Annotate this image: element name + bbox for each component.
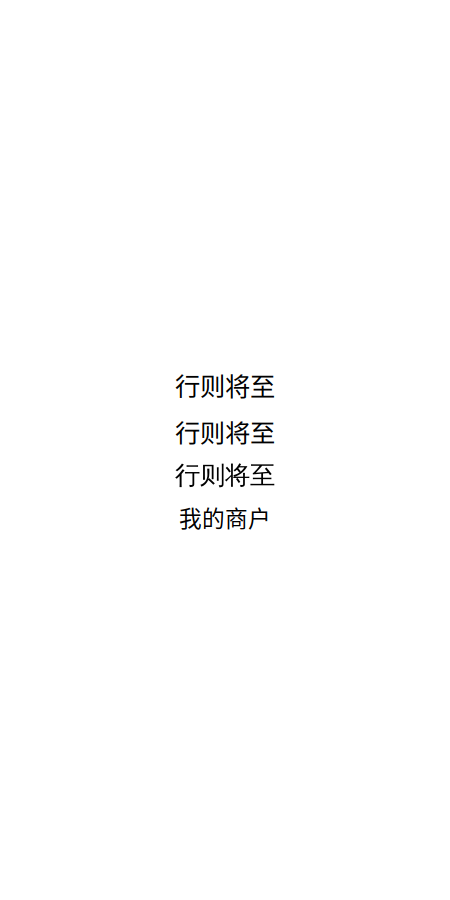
staticText: 行则将至 [175, 460, 275, 491]
staticText: 行则将至 [175, 366, 275, 403]
staticText: 行则将至 [175, 413, 275, 450]
staticText: 我的商户 [179, 501, 271, 534]
